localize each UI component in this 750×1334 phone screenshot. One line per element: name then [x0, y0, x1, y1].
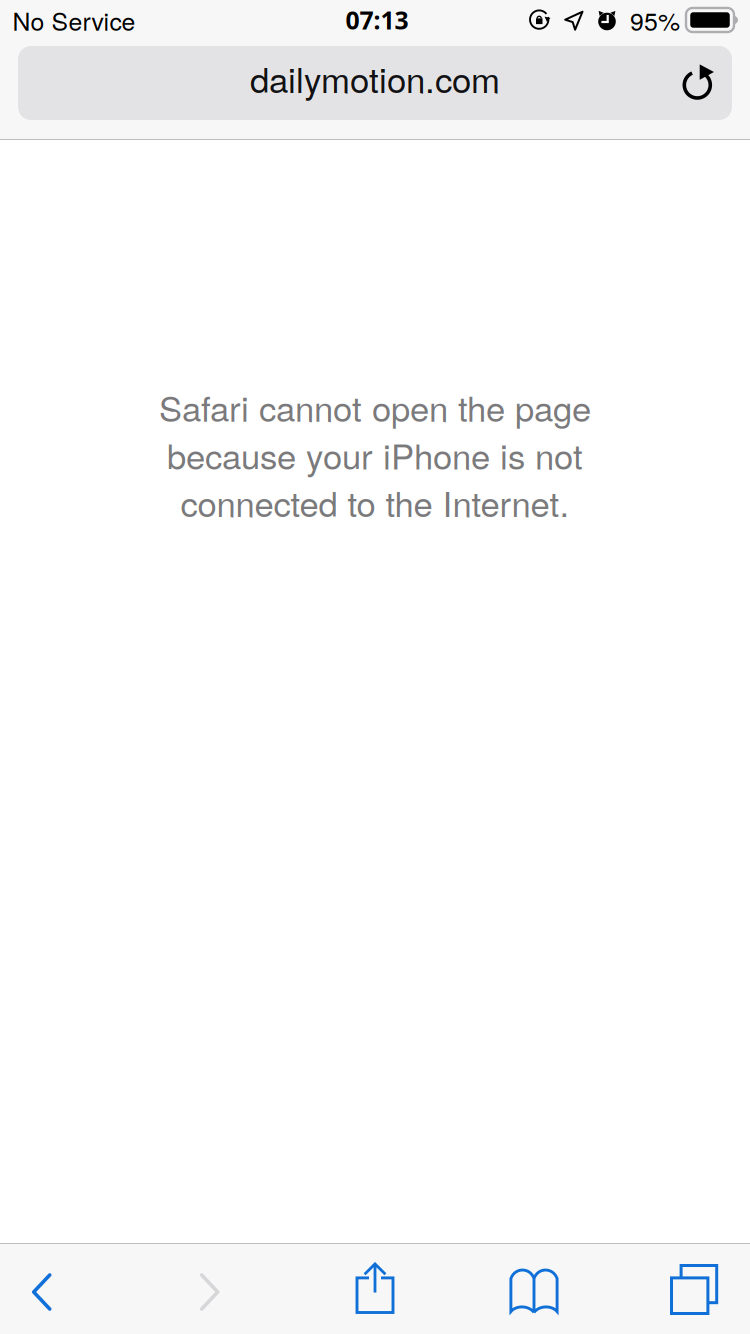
button[interactable]: dailymotion.com	[18, 46, 732, 120]
staticText: because your iPhone is not	[167, 430, 583, 479]
staticText: Safari cannot open the page	[159, 382, 591, 432]
staticText: dailymotion.com	[250, 53, 500, 103]
staticText: 95%	[630, 2, 680, 38]
staticText: No Service	[12, 2, 135, 38]
button[interactable]: Share	[310, 1243, 440, 1332]
button[interactable]: Bookmarks	[469, 1245, 599, 1334]
button[interactable]: Reload	[666, 46, 732, 120]
staticText: connected to the Internet.	[180, 477, 569, 527]
staticText: 07:13	[345, 3, 408, 37]
button[interactable]: Back	[0, 1247, 107, 1334]
button[interactable]: Tabs	[629, 1244, 750, 1333]
button[interactable]: Forward	[145, 1247, 275, 1334]
